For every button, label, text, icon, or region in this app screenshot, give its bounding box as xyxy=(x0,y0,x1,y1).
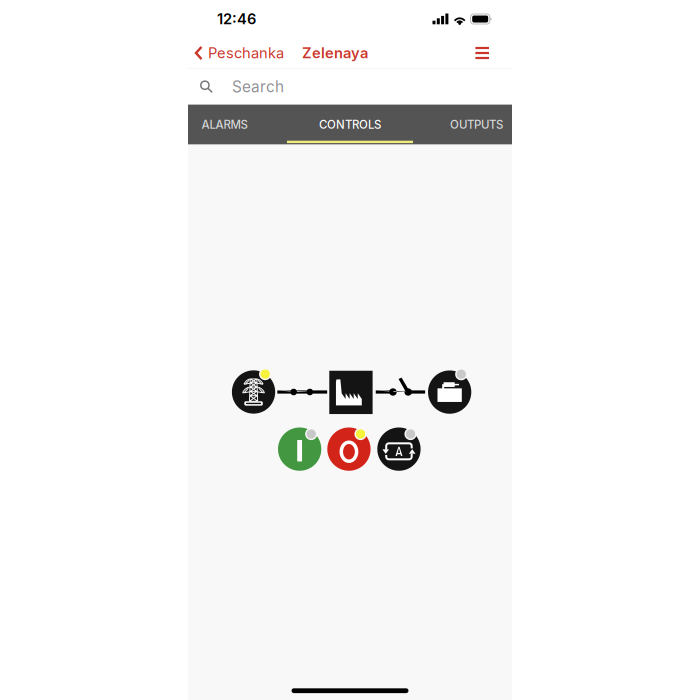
staticText: OUTPUTS xyxy=(450,118,503,132)
button[interactable]: Zelenaya xyxy=(298,39,372,67)
staticText: Peschanka xyxy=(208,44,284,62)
button[interactable]: Substation load xyxy=(329,371,373,414)
button[interactable]: OUTPUTS xyxy=(404,105,512,145)
button[interactable]: Automatic mode xyxy=(377,427,421,471)
staticText: Search xyxy=(232,77,284,96)
button[interactable]: Menu xyxy=(466,38,512,68)
staticText: CONTROLS xyxy=(319,118,381,132)
button[interactable]: Switch off xyxy=(327,427,371,471)
staticText: Zelenaya xyxy=(302,44,368,62)
button[interactable]: ALARMS xyxy=(188,105,296,145)
button[interactable]: Switch on xyxy=(278,427,321,471)
button[interactable]: Search xyxy=(188,69,512,105)
button[interactable]: CONTROLS xyxy=(296,105,404,145)
staticText: 12:46 xyxy=(217,10,256,28)
button[interactable]: Peschanka xyxy=(188,39,288,67)
button[interactable]: Transmission line xyxy=(232,370,275,414)
staticText: ALARMS xyxy=(201,118,247,132)
button[interactable]: Circuit breaker xyxy=(428,370,471,414)
